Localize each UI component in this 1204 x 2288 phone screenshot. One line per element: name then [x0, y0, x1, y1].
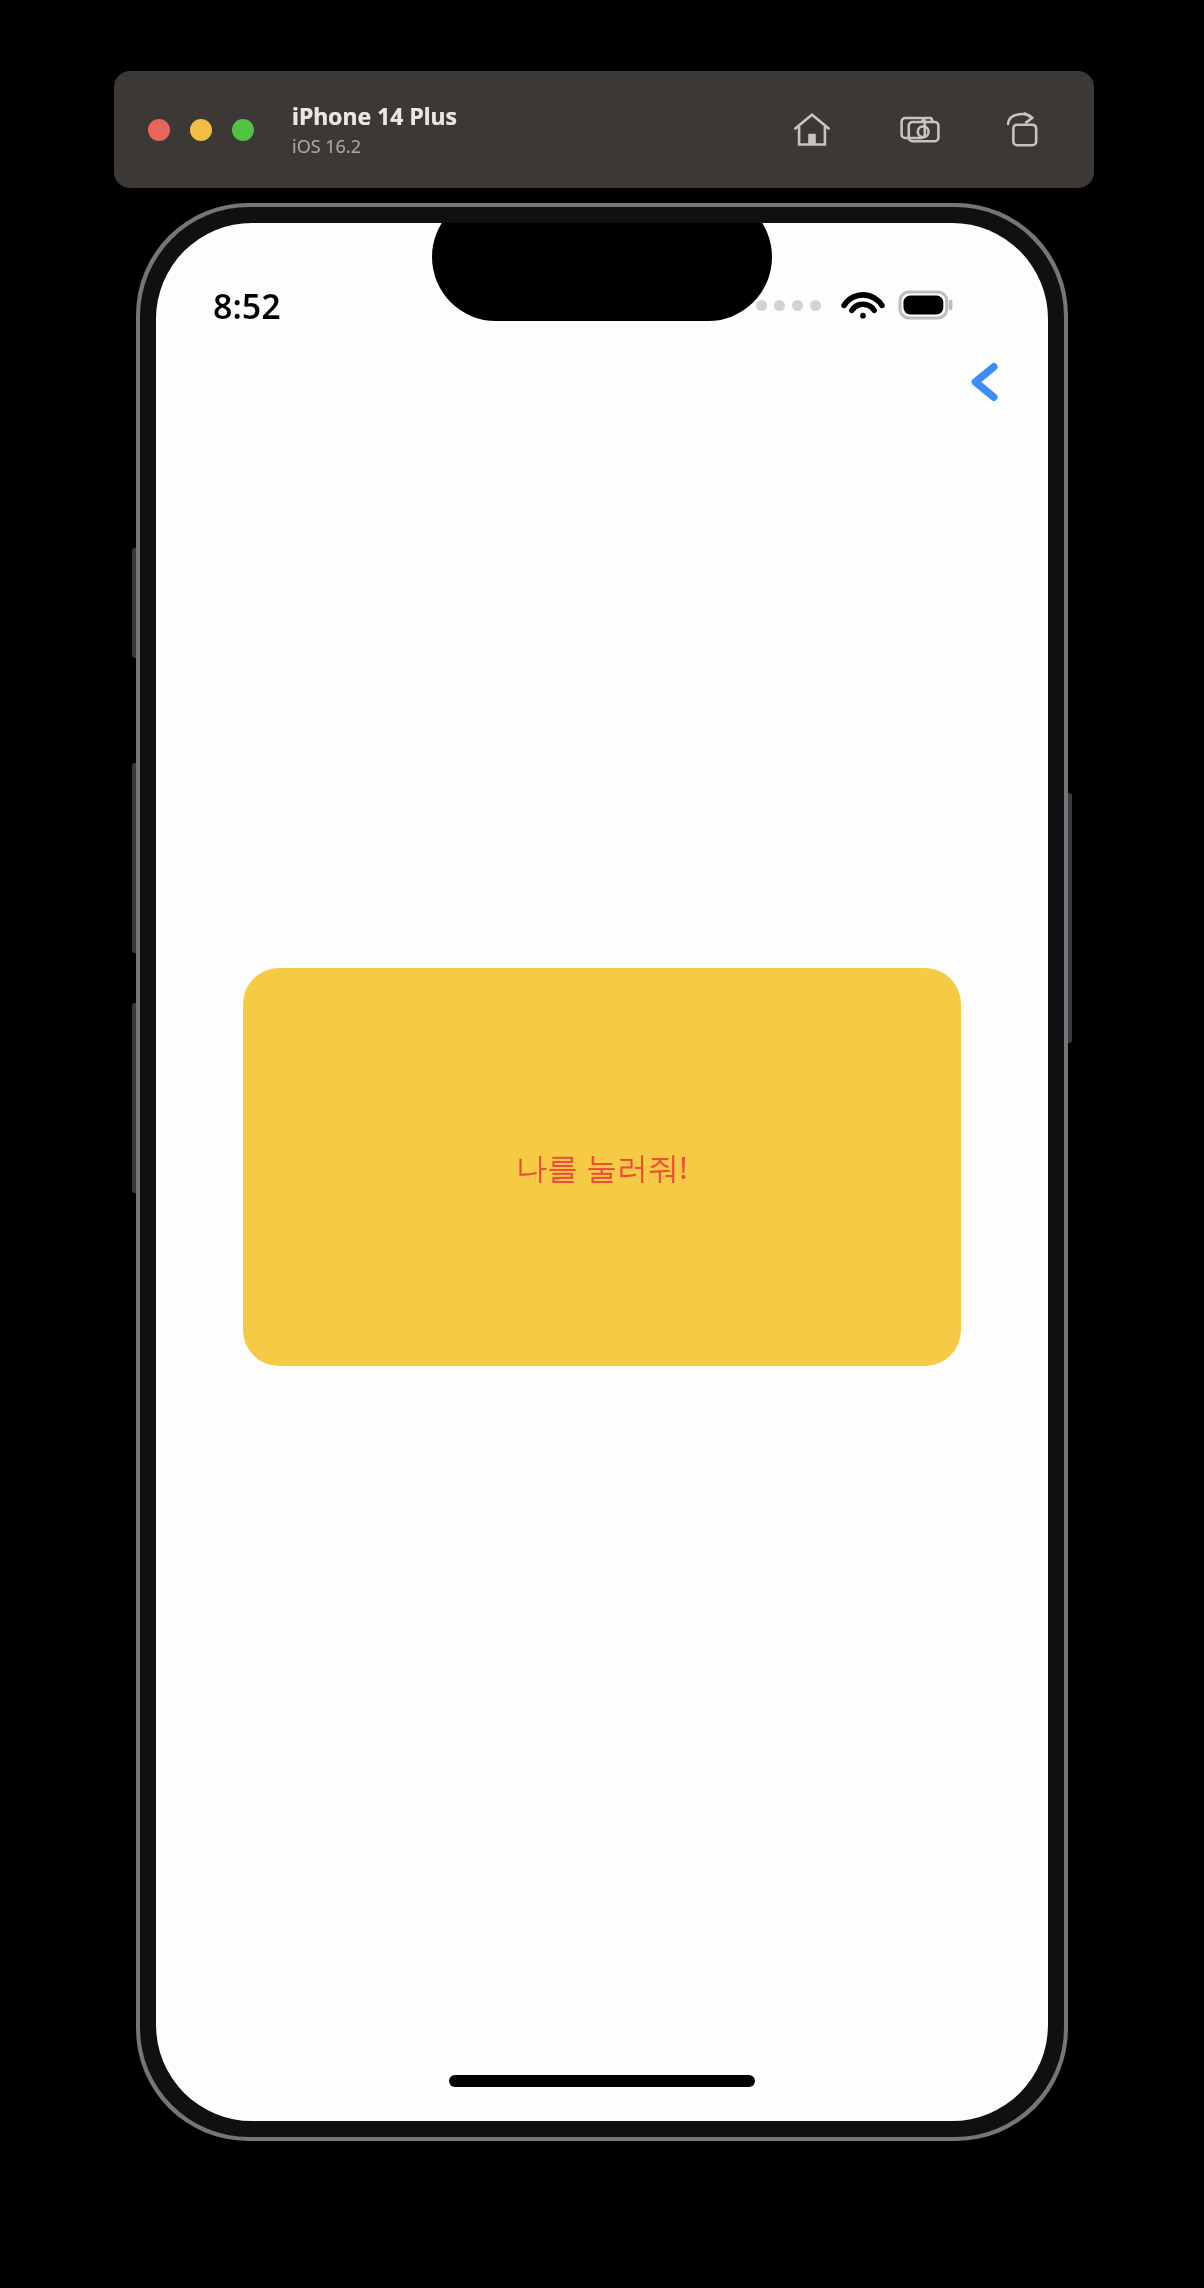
button[interactable]: Close window [148, 119, 170, 141]
staticText: 8:52 [213, 283, 281, 329]
staticText: iPhone 14 Plus [292, 100, 458, 131]
staticText: 나를 눌러줘! [516, 1146, 688, 1188]
button[interactable]: Home [788, 106, 836, 154]
button[interactable]: Maximize window [232, 119, 254, 141]
staticText: iOS 16.2 [292, 134, 361, 159]
button[interactable]: Rotate [1000, 106, 1048, 154]
button[interactable]: Minimize window [190, 119, 212, 141]
button[interactable]: 나를 눌러줘! [243, 968, 961, 1366]
button[interactable]: Back [946, 343, 1024, 421]
button[interactable]: Screenshot [896, 106, 944, 154]
